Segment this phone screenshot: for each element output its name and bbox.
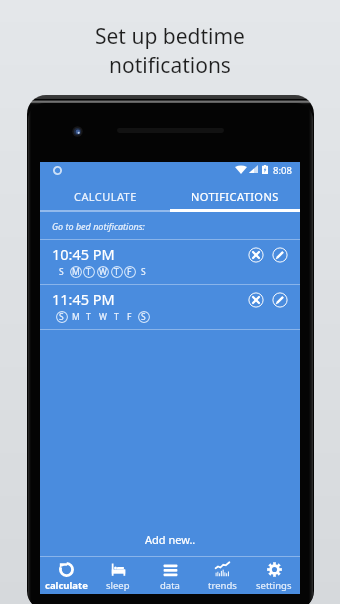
staticText: T [114, 311, 119, 323]
staticText: calculate [45, 579, 88, 592]
staticText: Go to bed notifications: [52, 220, 145, 232]
button[interactable]: Delete notification [248, 292, 264, 308]
button[interactable]: 11:45 PM [40, 285, 300, 329]
staticText: Set up bedtime [95, 22, 245, 51]
staticText: settings [256, 579, 292, 592]
staticText: T [86, 266, 91, 278]
button[interactable]: trends [196, 557, 248, 594]
staticText: 10:45 PM [52, 244, 115, 264]
button[interactable]: 10:45 PM [40, 240, 300, 284]
staticText: 8:08 [273, 164, 292, 177]
staticText: notifications [109, 51, 231, 80]
button[interactable]: sleep [92, 557, 144, 594]
staticText: Add new.. [145, 532, 196, 547]
staticText: S [141, 266, 146, 278]
staticText: 11:45 PM [52, 289, 115, 309]
button[interactable]: Edit notification [272, 247, 288, 263]
staticText: F [127, 266, 132, 278]
button[interactable]: Delete notification [248, 247, 264, 263]
staticText: M [72, 266, 80, 278]
staticText: M [72, 311, 80, 323]
button[interactable]: settings [248, 557, 300, 594]
staticText: T [114, 266, 119, 278]
staticText: NOTIFICATIONS [191, 189, 279, 204]
staticText: CALCULATE [74, 189, 137, 204]
button[interactable]: NOTIFICATIONS [170, 180, 300, 212]
staticText: W [99, 311, 107, 323]
staticText: S [59, 266, 64, 278]
staticText: W [99, 266, 107, 278]
button[interactable]: CALCULATE [40, 180, 170, 212]
button[interactable]: Edit notification [272, 292, 288, 308]
staticText: S [141, 311, 146, 323]
staticText: T [86, 311, 91, 323]
button[interactable]: Add new.. [40, 522, 300, 556]
staticText: data [160, 579, 180, 592]
button[interactable]: calculate [40, 557, 92, 594]
staticText: trends [208, 579, 237, 592]
staticText: F [127, 311, 132, 323]
staticText: S [59, 311, 64, 323]
staticText: sleep [106, 579, 130, 592]
button[interactable]: data [144, 557, 196, 594]
